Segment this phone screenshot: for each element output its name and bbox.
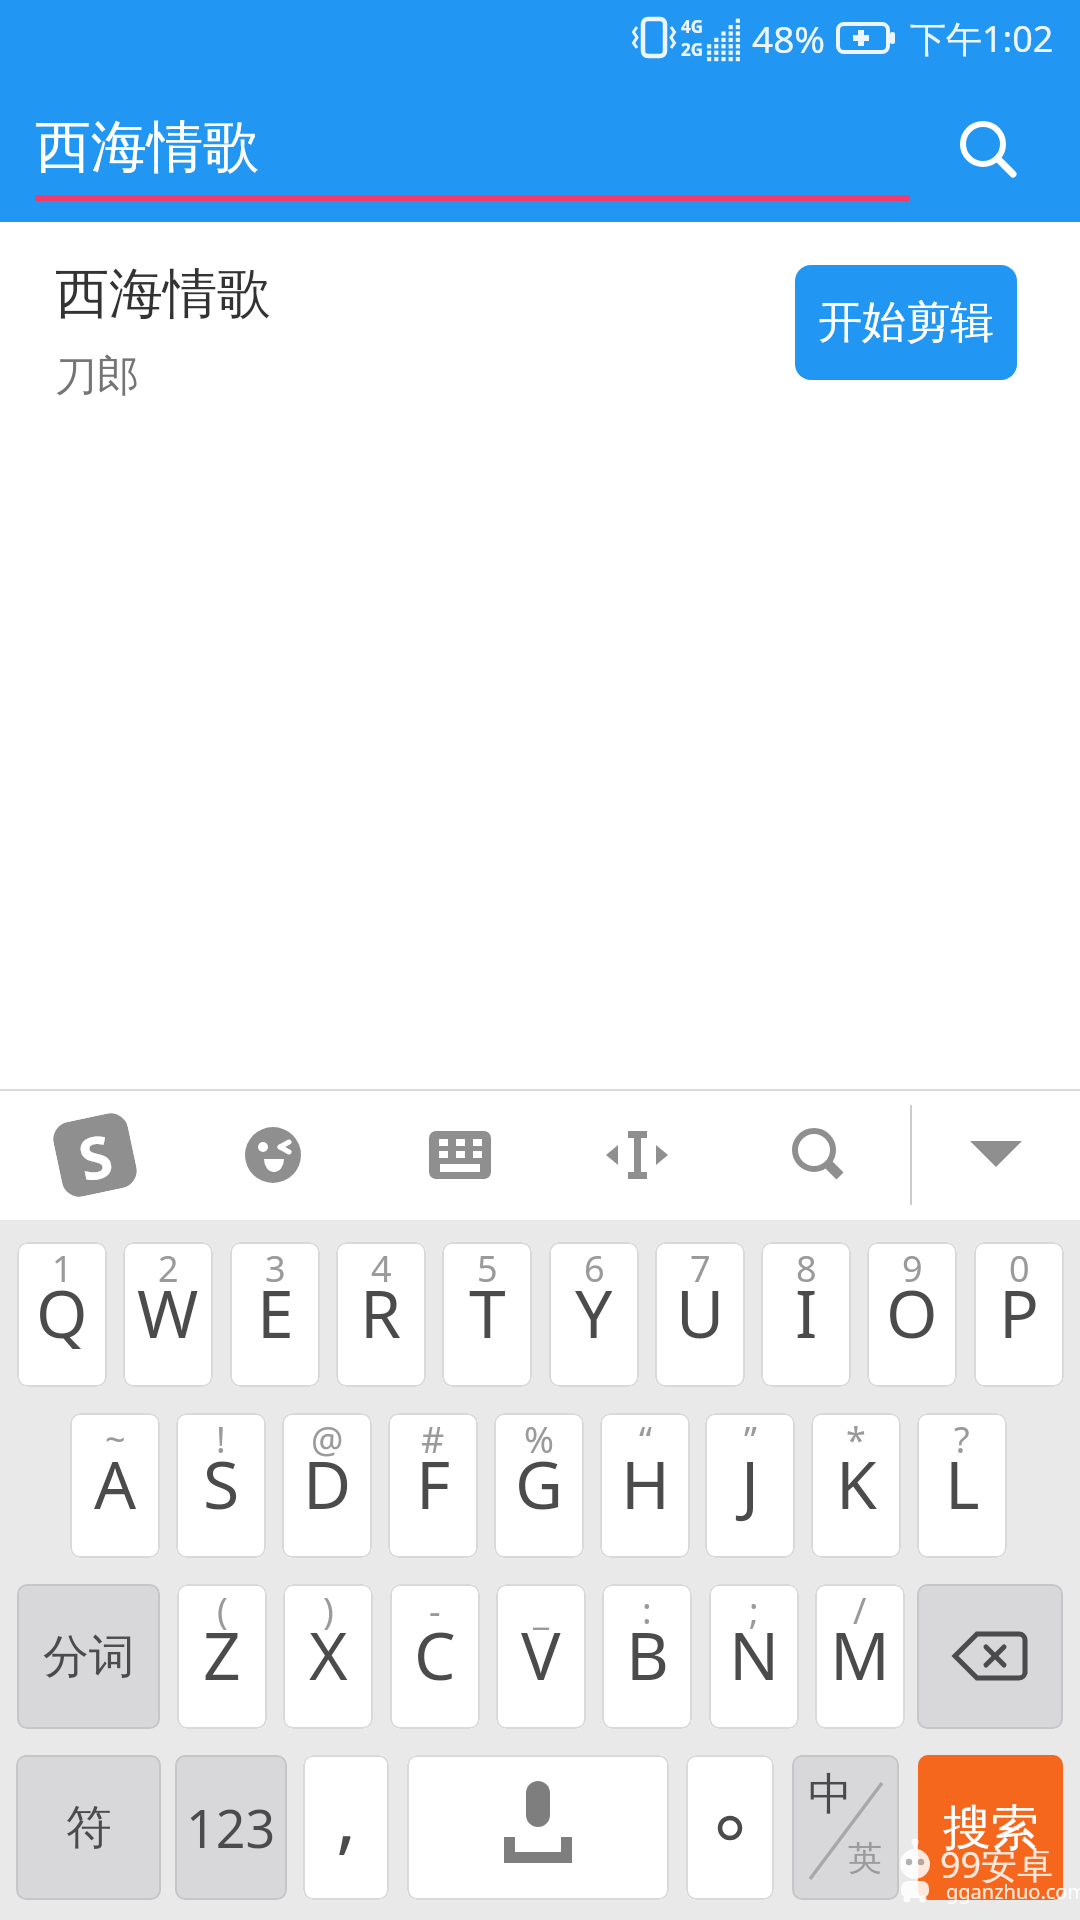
staticText: P xyxy=(999,1267,1039,1357)
button[interactable]: 西海情歌 xyxy=(30,242,750,412)
staticText: S xyxy=(71,1114,118,1195)
button[interactable]: 中 xyxy=(792,1755,899,1900)
staticText: 搜索 xyxy=(943,1798,1039,1858)
button[interactable]: @ xyxy=(282,1413,372,1558)
button[interactable]: ( xyxy=(177,1584,267,1729)
staticText: ) xyxy=(323,1586,334,1635)
staticText: Y xyxy=(575,1267,613,1357)
staticText: @ xyxy=(311,1415,344,1464)
staticText: , xyxy=(336,1764,357,1868)
button[interactable] xyxy=(952,112,1024,184)
staticText: 西海情歌 xyxy=(35,112,259,183)
staticText: ( xyxy=(217,1586,228,1635)
staticText: F xyxy=(416,1438,451,1528)
button[interactable]: 开始剪辑 xyxy=(795,265,1017,380)
button[interactable]: ” xyxy=(705,1413,795,1558)
button[interactable]: S xyxy=(57,1117,133,1193)
button[interactable]: ! xyxy=(176,1413,266,1558)
staticText: J xyxy=(741,1438,760,1528)
button[interactable]: ~ xyxy=(70,1413,160,1558)
staticText: * xyxy=(846,1415,866,1464)
staticText: K xyxy=(836,1438,877,1528)
button[interactable]: 搜索 xyxy=(918,1755,1063,1900)
button[interactable]: * xyxy=(811,1413,901,1558)
button[interactable] xyxy=(407,1755,669,1900)
staticText: W xyxy=(137,1267,199,1357)
button[interactable]: _ xyxy=(496,1584,586,1729)
button[interactable] xyxy=(788,1125,850,1187)
button[interactable]: 3 xyxy=(230,1242,320,1387)
button[interactable]: / xyxy=(815,1584,905,1729)
staticText: 7 xyxy=(690,1244,711,1293)
staticText: G xyxy=(515,1438,564,1528)
staticText: T xyxy=(469,1267,506,1357)
button[interactable] xyxy=(243,1125,303,1185)
staticText: / xyxy=(853,1586,867,1635)
staticText: U xyxy=(676,1267,725,1357)
staticText: 99安卓 xyxy=(940,1840,1054,1889)
button[interactable]: 分词 xyxy=(17,1584,160,1729)
staticText: I xyxy=(795,1267,818,1357)
staticText: # xyxy=(421,1415,445,1464)
staticText: 9 xyxy=(902,1244,923,1293)
staticText: ? xyxy=(954,1415,970,1464)
button[interactable] xyxy=(968,1137,1024,1177)
button[interactable]: 4 xyxy=(336,1242,426,1387)
button[interactable]: 符 xyxy=(16,1755,161,1900)
button[interactable]: 8 xyxy=(761,1242,851,1387)
button[interactable]: 7 xyxy=(655,1242,745,1387)
staticText: “ xyxy=(639,1415,652,1464)
staticText: 8 xyxy=(796,1244,817,1293)
button[interactable]: # xyxy=(388,1413,478,1558)
button[interactable]: 6 xyxy=(549,1242,639,1387)
staticText: R xyxy=(360,1267,402,1357)
staticText: L xyxy=(945,1438,980,1528)
button[interactable]: - xyxy=(390,1584,480,1729)
staticText: : xyxy=(642,1586,652,1635)
staticText: 2 xyxy=(158,1244,179,1293)
button[interactable] xyxy=(686,1755,774,1900)
staticText: 下午1:02 xyxy=(910,14,1054,63)
staticText: 中 xyxy=(808,1767,852,1822)
button[interactable]: ? xyxy=(917,1413,1007,1558)
staticText: X xyxy=(309,1609,348,1699)
staticText: 分词 xyxy=(43,1628,135,1686)
button[interactable]: ) xyxy=(283,1584,373,1729)
staticText: O xyxy=(886,1267,938,1357)
button[interactable]: 西海情歌 xyxy=(35,96,910,201)
button[interactable]: : xyxy=(602,1584,692,1729)
button[interactable] xyxy=(605,1127,669,1183)
staticText: _ xyxy=(533,1586,549,1635)
staticText: S xyxy=(203,1438,240,1528)
button[interactable]: 123 xyxy=(175,1755,287,1900)
button[interactable] xyxy=(917,1584,1063,1729)
staticText: Q xyxy=(36,1267,88,1357)
button[interactable]: 5 xyxy=(442,1242,532,1387)
button[interactable]: 0 xyxy=(974,1242,1064,1387)
staticText: H xyxy=(621,1438,670,1528)
staticText: M xyxy=(830,1609,890,1699)
staticText: 符 xyxy=(66,1799,112,1857)
staticText: gganzhuo.com xyxy=(946,1878,1080,1905)
staticText: 刀郎 xyxy=(55,350,139,403)
staticText: 4 xyxy=(371,1244,392,1293)
button[interactable] xyxy=(429,1131,491,1179)
staticText: 4G xyxy=(681,15,704,38)
staticText: C xyxy=(414,1609,456,1699)
staticText: 48% xyxy=(752,13,826,63)
staticText: D xyxy=(303,1438,352,1528)
staticText: 1 xyxy=(52,1244,73,1293)
button[interactable]: 2 xyxy=(123,1242,213,1387)
button[interactable]: , xyxy=(303,1755,389,1900)
button[interactable]: 1 xyxy=(17,1242,107,1387)
button[interactable]: “ xyxy=(600,1413,690,1558)
button[interactable]: ; xyxy=(709,1584,799,1729)
staticText: A xyxy=(94,1438,137,1528)
staticText: V xyxy=(521,1609,561,1699)
button[interactable]: % xyxy=(494,1413,584,1558)
button[interactable]: 9 xyxy=(867,1242,957,1387)
staticText: 6 xyxy=(584,1244,605,1293)
staticText: ! xyxy=(216,1415,226,1464)
staticText: ~ xyxy=(105,1415,126,1464)
staticText: E xyxy=(257,1267,294,1357)
